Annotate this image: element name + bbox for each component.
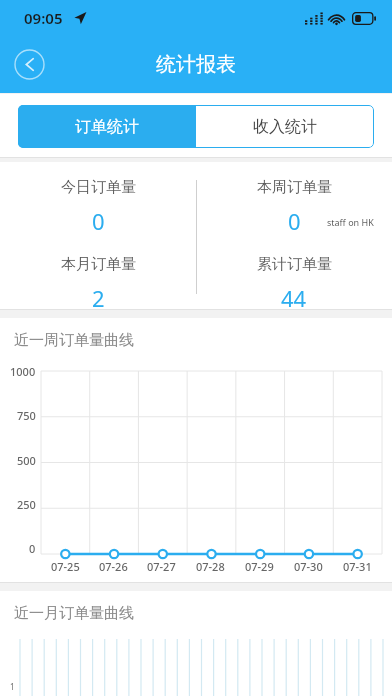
- staticText: staff on HK: [327, 216, 374, 228]
- staticText: 07-31: [343, 559, 372, 574]
- staticText: 07-26: [99, 559, 128, 574]
- staticText: 07-28: [196, 559, 225, 574]
- staticText: 本月订单量: [61, 255, 136, 274]
- staticText: 07-25: [51, 559, 80, 574]
- staticText: 统计报表: [156, 52, 236, 77]
- staticText: 07-27: [147, 559, 176, 574]
- staticText: 07-29: [245, 559, 274, 574]
- staticText: 1: [10, 681, 15, 692]
- staticText: 近一月订单量曲线: [14, 604, 134, 623]
- staticText: 订单统计: [75, 117, 139, 137]
- staticText: 1000: [10, 364, 36, 379]
- staticText: 近一周订单量曲线: [14, 331, 134, 350]
- button[interactable]: Back: [14, 49, 45, 80]
- staticText: 44: [281, 283, 307, 310]
- button[interactable]: 收入统计: [196, 105, 374, 148]
- staticText: 0: [288, 206, 301, 236]
- button[interactable]: 订单统计: [18, 105, 196, 148]
- staticText: 09:05: [24, 8, 63, 28]
- staticText: 500: [17, 453, 36, 468]
- staticText: 今日订单量: [61, 178, 136, 197]
- staticText: 750: [17, 408, 36, 423]
- staticText: 2: [92, 283, 105, 310]
- staticText: 收入统计: [253, 117, 317, 137]
- staticText: 0: [92, 206, 105, 236]
- staticText: 累计订单量: [257, 255, 332, 274]
- staticText: 0: [29, 541, 36, 556]
- staticText: 本周订单量: [257, 178, 332, 197]
- staticText: 250: [17, 497, 36, 512]
- staticText: 07-30: [294, 559, 323, 574]
